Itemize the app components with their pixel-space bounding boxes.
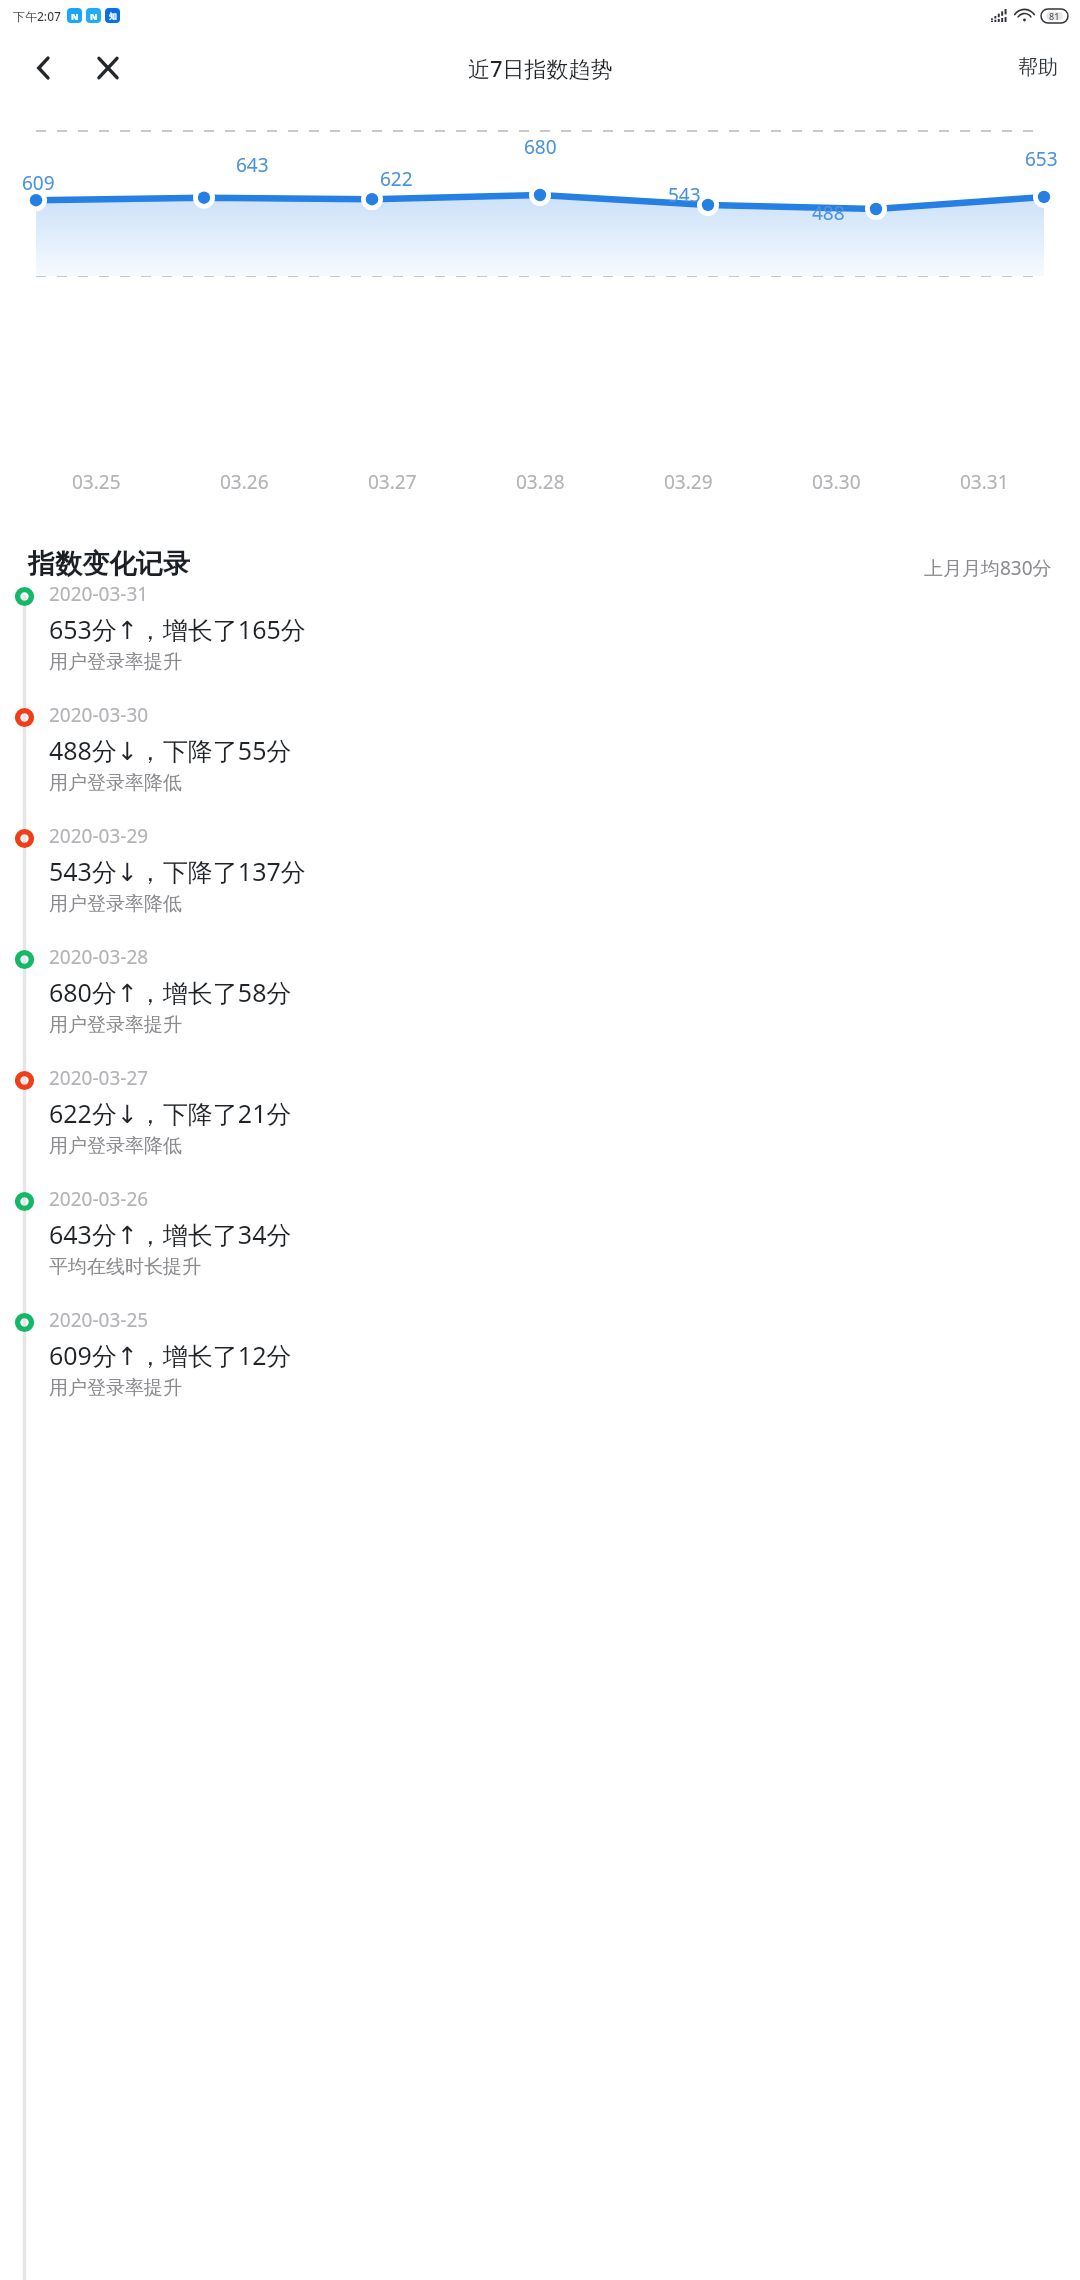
staticText: 622: [380, 166, 413, 192]
staticText: 上月月均830分: [924, 555, 1052, 581]
staticText: 2020-03-30: [49, 702, 149, 728]
button[interactable]: Close: [82, 42, 134, 94]
staticText: 03.31: [960, 469, 1009, 495]
staticText: 下午2:07: [13, 8, 61, 24]
staticText: 用户登录率提升: [49, 1376, 182, 1400]
staticText: 680分↑，增长了58分: [49, 975, 292, 1009]
staticText: 指数变化记录: [28, 547, 190, 581]
staticText: 2020-03-28: [49, 944, 149, 970]
staticText: 653分↑，增长了165分: [49, 612, 306, 646]
button[interactable]: 2020-03-28: [0, 944, 1080, 1065]
staticText: 用户登录率降低: [49, 771, 182, 795]
staticText: 03.30: [812, 469, 861, 495]
staticText: 609分↑，增长了12分: [49, 1338, 292, 1372]
staticText: N: [90, 10, 98, 22]
staticText: 03.27: [368, 469, 417, 495]
button[interactable]: 帮助: [996, 45, 1080, 90]
staticText: 653: [1025, 146, 1058, 172]
staticText: 81: [1049, 10, 1060, 22]
staticText: 用户登录率提升: [49, 650, 182, 674]
staticText: 2020-03-29: [49, 823, 149, 849]
staticText: 2020-03-25: [49, 1307, 149, 1333]
button[interactable]: 2020-03-29: [0, 823, 1080, 944]
staticText: 帮助: [1018, 55, 1058, 80]
staticText: 03.26: [220, 469, 269, 495]
staticText: 近7日指数趋势: [468, 53, 613, 83]
staticText: 用户登录率提升: [49, 1013, 182, 1037]
button[interactable]: 2020-03-25: [0, 1307, 1080, 1428]
staticText: 543: [668, 182, 701, 208]
staticText: 609: [22, 170, 55, 196]
staticText: 643: [236, 152, 269, 178]
staticText: 643分↑，增长了34分: [49, 1217, 292, 1251]
staticText: 03.25: [72, 469, 121, 495]
staticText: 平均在线时长提升: [49, 1255, 201, 1279]
staticText: 用户登录率降低: [49, 892, 182, 916]
button[interactable]: 2020-03-26: [0, 1186, 1080, 1307]
staticText: 03.29: [664, 469, 713, 495]
button[interactable]: 2020-03-31: [0, 581, 1080, 702]
button[interactable]: 2020-03-30: [0, 702, 1080, 823]
staticText: 543分↓，下降了137分: [49, 854, 306, 888]
staticText: 622分↓，下降了21分: [49, 1096, 292, 1130]
staticText: 2020-03-31: [49, 581, 149, 607]
staticText: 知: [109, 11, 117, 21]
staticText: 488分↓，下降了55分: [49, 733, 292, 767]
button[interactable]: 2020-03-27: [0, 1065, 1080, 1186]
staticText: 用户登录率降低: [49, 1134, 182, 1158]
staticText: 2020-03-27: [49, 1065, 149, 1091]
staticText: 2020-03-26: [49, 1186, 149, 1212]
staticText: 488: [812, 200, 845, 226]
staticText: 680: [524, 134, 557, 160]
staticText: N: [71, 10, 79, 22]
button[interactable]: Back: [18, 42, 70, 94]
staticText: 03.28: [516, 469, 565, 495]
